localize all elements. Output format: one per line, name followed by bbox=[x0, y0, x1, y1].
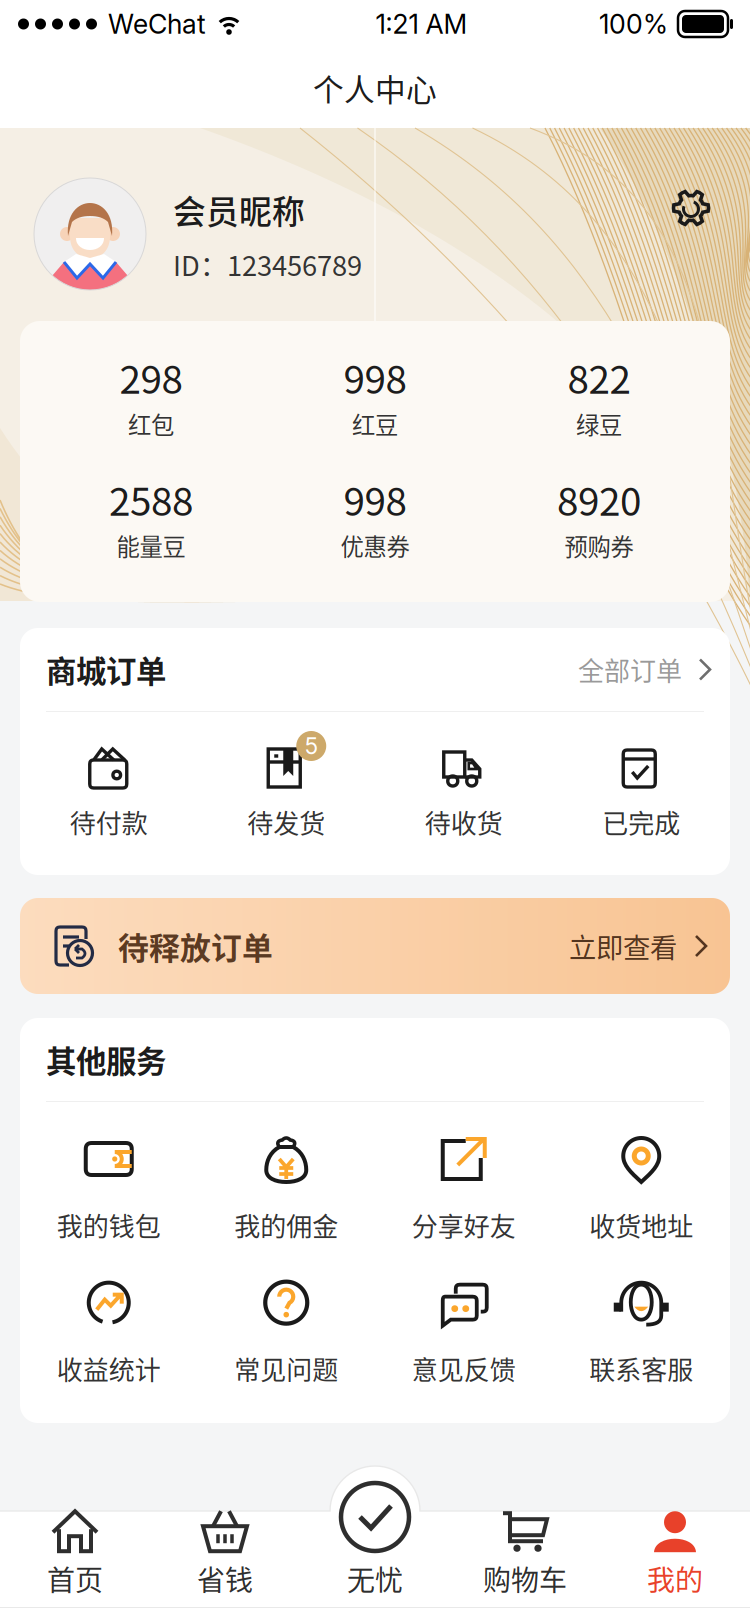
button[interactable]: 无忧 bbox=[338, 1480, 412, 1554]
staticText: 2588 bbox=[109, 471, 193, 527]
staticText: 待释放订单 bbox=[118, 924, 273, 968]
staticText: 我的钱包 bbox=[57, 1206, 161, 1244]
staticText: 优惠券 bbox=[340, 529, 409, 563]
staticText: 全部订单 bbox=[578, 651, 682, 688]
button[interactable]: 已完成 bbox=[552, 741, 730, 841]
button[interactable]: 待释放订单 bbox=[20, 898, 730, 994]
staticText: 能量豆 bbox=[116, 529, 185, 563]
button[interactable]: 常见问题 bbox=[197, 1278, 375, 1387]
staticText: 待付款 bbox=[70, 803, 148, 841]
staticText: 5 bbox=[305, 732, 318, 760]
button[interactable]: 998 bbox=[263, 349, 487, 441]
button[interactable]: 我的钱包 bbox=[20, 1134, 197, 1244]
staticText: 其他服务 bbox=[46, 1037, 166, 1081]
staticText: 998 bbox=[343, 471, 406, 527]
button[interactable]: 首页 bbox=[0, 1498, 150, 1609]
staticText: 红包 bbox=[128, 407, 174, 441]
staticText: 意见反馈 bbox=[412, 1350, 516, 1387]
staticText: 100% bbox=[599, 8, 668, 40]
staticText: 购物车 bbox=[483, 1558, 567, 1599]
button[interactable]: 待收货 bbox=[375, 741, 552, 841]
staticText: 会员昵称 bbox=[173, 186, 305, 233]
staticText: 联系客服 bbox=[589, 1350, 693, 1387]
button[interactable]: 收货地址 bbox=[552, 1134, 730, 1244]
staticText: 待收货 bbox=[425, 803, 503, 841]
button[interactable]: 998 bbox=[263, 471, 487, 563]
staticText: 商城订单 bbox=[46, 647, 166, 691]
staticText: 分享好友 bbox=[412, 1206, 516, 1244]
button[interactable]: 商城订单 bbox=[20, 628, 730, 711]
staticText: 个人中心 bbox=[313, 66, 437, 110]
staticText: 我的 bbox=[647, 1558, 703, 1599]
button[interactable]: 8920 bbox=[487, 471, 711, 563]
staticText: 立即查看 bbox=[569, 926, 677, 966]
button[interactable]: 购物车 bbox=[450, 1498, 600, 1609]
staticText: 红豆 bbox=[352, 407, 398, 441]
staticText: 常见问题 bbox=[234, 1350, 338, 1387]
button[interactable]: 省钱 bbox=[150, 1498, 300, 1609]
button[interactable]: 我的 bbox=[600, 1498, 750, 1609]
button[interactable]: 2588 bbox=[39, 471, 263, 563]
staticText: 收货地址 bbox=[589, 1206, 693, 1244]
button[interactable]: 5 bbox=[197, 741, 375, 841]
staticText: 预购券 bbox=[564, 529, 633, 563]
staticText: 已完成 bbox=[602, 803, 680, 841]
button[interactable]: 298 bbox=[39, 349, 263, 441]
staticText: 1:21 AM bbox=[375, 8, 467, 40]
button[interactable]: 分享好友 bbox=[375, 1134, 552, 1244]
staticText: 298 bbox=[119, 349, 182, 405]
button[interactable]: 联系客服 bbox=[552, 1278, 730, 1387]
button[interactable]: 无忧 bbox=[300, 1498, 450, 1609]
button[interactable]: 收益统计 bbox=[20, 1278, 197, 1387]
staticText: 998 bbox=[343, 349, 406, 405]
staticText: 待发货 bbox=[247, 803, 325, 841]
staticText: 收益统计 bbox=[57, 1350, 161, 1387]
button[interactable]: 意见反馈 bbox=[375, 1278, 552, 1387]
button[interactable]: 设置 bbox=[671, 188, 711, 228]
staticText: ID：123456789 bbox=[173, 244, 362, 284]
staticText: 8920 bbox=[557, 471, 641, 527]
staticText: 无忧 bbox=[347, 1558, 403, 1599]
button[interactable]: 我的佣金 bbox=[197, 1134, 375, 1244]
staticText: 首页 bbox=[47, 1558, 103, 1599]
staticText: 省钱 bbox=[197, 1558, 253, 1599]
staticText: 绿豆 bbox=[576, 407, 622, 441]
button[interactable]: 822 bbox=[487, 349, 711, 441]
staticText: 822 bbox=[567, 349, 630, 405]
button[interactable]: 待付款 bbox=[20, 741, 197, 841]
staticText: WeChat bbox=[108, 8, 206, 40]
staticText: 我的佣金 bbox=[234, 1206, 338, 1244]
